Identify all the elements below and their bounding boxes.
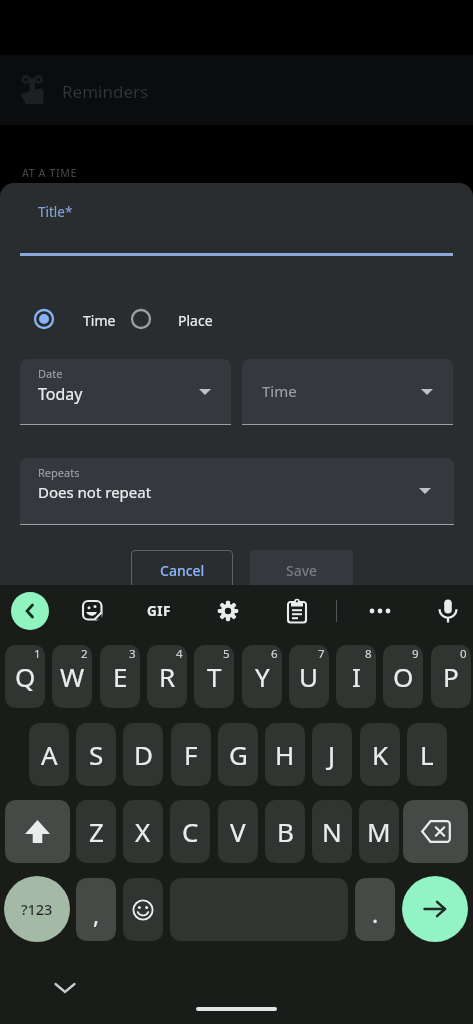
staticText: R — [159, 659, 176, 694]
staticText: Title* — [38, 203, 73, 221]
button[interactable]: V — [218, 800, 258, 863]
staticText: V — [230, 814, 246, 849]
button[interactable]: . — [355, 878, 395, 941]
button[interactable] — [5, 800, 70, 863]
button[interactable]: M — [359, 800, 399, 863]
staticText: Time — [83, 311, 116, 330]
staticText: C — [182, 814, 199, 849]
button[interactable]: B — [265, 800, 305, 863]
staticText: Date — [38, 366, 63, 381]
staticText: A — [41, 737, 58, 772]
button[interactable]: Y — [242, 645, 282, 708]
button[interactable]: , — [76, 878, 116, 941]
button[interactable]: E — [100, 645, 140, 708]
staticText: F — [184, 737, 198, 772]
staticText: 2 — [81, 646, 88, 662]
button[interactable]: I — [336, 645, 376, 708]
button[interactable]: D — [123, 723, 163, 786]
staticText: Time — [262, 381, 297, 401]
staticText: 3 — [129, 646, 136, 662]
staticText: , — [93, 899, 100, 930]
staticText: D — [134, 737, 153, 772]
staticText: T — [207, 659, 222, 694]
button[interactable]: Title* — [20, 183, 453, 256]
staticText: K — [372, 737, 389, 772]
button[interactable]: Repeats — [20, 458, 454, 525]
staticText: 8 — [365, 646, 372, 662]
staticText: ?123 — [21, 899, 53, 919]
button[interactable]: Place — [121, 299, 221, 339]
button[interactable]: Z — [76, 800, 116, 863]
staticText: L — [420, 737, 434, 772]
button[interactable] — [403, 800, 468, 863]
staticText: 9 — [412, 646, 419, 662]
button[interactable]: Q — [5, 645, 45, 708]
button[interactable]: P — [431, 645, 471, 708]
button[interactable]: Time — [24, 299, 119, 339]
button[interactable]: S — [76, 723, 116, 786]
staticText: Today — [38, 383, 83, 405]
button[interactable]: R — [147, 645, 187, 708]
staticText: GIF — [147, 602, 171, 620]
button[interactable]: O — [383, 645, 423, 708]
button[interactable]: G — [218, 723, 258, 786]
staticText: N — [322, 814, 342, 849]
button[interactable]: L — [407, 723, 447, 786]
button[interactable]: A — [29, 723, 69, 786]
staticText: Repeats — [38, 465, 80, 480]
staticText: J — [328, 737, 336, 772]
button[interactable]: T — [194, 645, 234, 708]
staticText: S — [89, 737, 104, 772]
staticText: H — [275, 737, 295, 772]
staticText: O — [393, 659, 414, 694]
staticText: E — [113, 659, 128, 694]
staticText: Reminders — [62, 80, 149, 103]
button[interactable]: GIF — [142, 598, 176, 624]
button[interactable]: Date — [20, 359, 231, 425]
button[interactable]: N — [312, 800, 352, 863]
staticText: 1 — [34, 646, 41, 662]
button[interactable]: J — [312, 723, 352, 786]
staticText: U — [299, 659, 319, 694]
staticText: X — [135, 814, 151, 849]
button[interactable]: K — [360, 723, 400, 786]
button[interactable] — [123, 878, 163, 941]
staticText: 7 — [318, 646, 325, 662]
staticText: 5 — [223, 646, 230, 662]
staticText: Does not repeat — [38, 482, 152, 502]
staticText: Q — [15, 659, 36, 694]
button[interactable]: F — [171, 723, 211, 786]
staticText: . — [372, 898, 379, 929]
staticText: Z — [89, 814, 104, 849]
button[interactable]: Cancel — [131, 550, 233, 590]
button[interactable]: W — [52, 645, 92, 708]
staticText: 4 — [176, 646, 183, 662]
staticText: AT A TIME — [22, 166, 77, 180]
button[interactable]: X — [123, 800, 163, 863]
button[interactable] — [434, 595, 462, 625]
staticText: Cancel — [160, 561, 205, 580]
button[interactable]: ?123 — [4, 876, 70, 942]
button[interactable] — [215, 598, 241, 624]
staticText: I — [352, 659, 361, 694]
button[interactable]: Save — [250, 550, 353, 590]
staticText: 6 — [271, 646, 278, 662]
staticText: P — [443, 659, 459, 694]
staticText: Place — [178, 311, 213, 330]
button[interactable] — [367, 598, 393, 624]
staticText: 0 — [460, 646, 467, 662]
button[interactable] — [80, 598, 106, 624]
staticText: W — [60, 659, 85, 694]
button[interactable]: H — [265, 723, 305, 786]
button[interactable]: Time — [242, 359, 453, 425]
staticText: Save — [286, 561, 318, 580]
button[interactable] — [402, 876, 468, 942]
button[interactable] — [284, 597, 310, 625]
button[interactable]: U — [289, 645, 329, 708]
staticText: G — [229, 737, 248, 772]
button[interactable] — [53, 979, 77, 997]
button[interactable] — [11, 592, 49, 630]
button[interactable]: C — [170, 800, 210, 863]
staticText: B — [277, 814, 294, 849]
